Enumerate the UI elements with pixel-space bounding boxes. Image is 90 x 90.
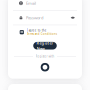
staticText: Password <box>26 15 43 20</box>
staticText: Register Now <box>36 40 53 51</box>
staticText: Terms and Conditions <box>27 32 57 36</box>
button[interactable]: Continue with Google <box>38 61 52 74</box>
button[interactable]: I agree to the <box>8 25 82 39</box>
staticText: I agree to the <box>27 29 47 32</box>
button[interactable]: Password <box>8 11 82 25</box>
staticText: Email <box>26 0 36 6</box>
button[interactable]: Register Now <box>33 42 57 49</box>
staticText: Register with <box>35 55 54 58</box>
button[interactable]: Email <box>8 0 82 10</box>
